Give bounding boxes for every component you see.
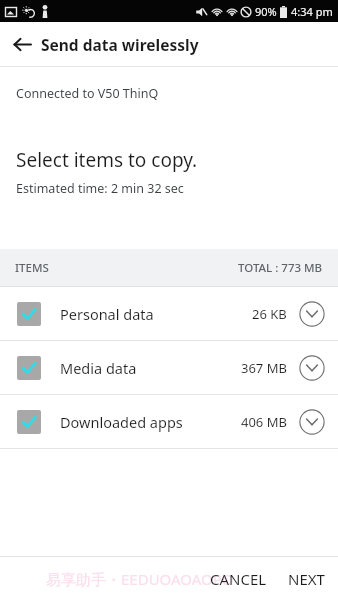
button[interactable]: Select Downloaded apps [17,410,41,434]
button[interactable]: Expand Media data [299,355,325,381]
staticText: 406 MB [241,413,287,431]
staticText: Downloaded apps [60,412,183,432]
staticText: Media data [60,358,137,378]
staticText: ITEMS [15,260,49,276]
staticText: 4:34 pm [291,4,333,19]
staticText: 367 MB [241,359,287,377]
staticText: Connected to V50 ThinQ [16,85,159,102]
button[interactable]: Select Media data [17,356,41,380]
button[interactable]: Back [2,24,42,64]
button[interactable]: Select Personal data [17,302,41,326]
button[interactable]: NEXT [280,560,338,598]
staticText: CANCEL [210,569,267,589]
button[interactable]: Select Media data [0,341,338,394]
staticText: Select items to copy. [16,147,198,173]
button[interactable]: CANCEL [202,560,275,598]
staticText: Send data wirelessly [41,34,199,55]
staticText: TOTAL : 773 MB [238,260,323,276]
button[interactable]: Expand Personal data [299,301,325,327]
staticText: Personal data [60,304,154,324]
staticText: NEXT [288,569,325,589]
button[interactable]: Expand Downloaded apps [299,409,325,435]
staticText: 26 KB [252,305,287,323]
staticText: 90% [255,4,277,19]
button[interactable]: Select Downloaded apps [0,395,338,448]
staticText: 易享助手・EEDUOAOAOPO [46,569,234,589]
button[interactable]: Select Personal data [0,287,338,340]
staticText: Estimated time: 2 min 32 sec [16,180,184,197]
